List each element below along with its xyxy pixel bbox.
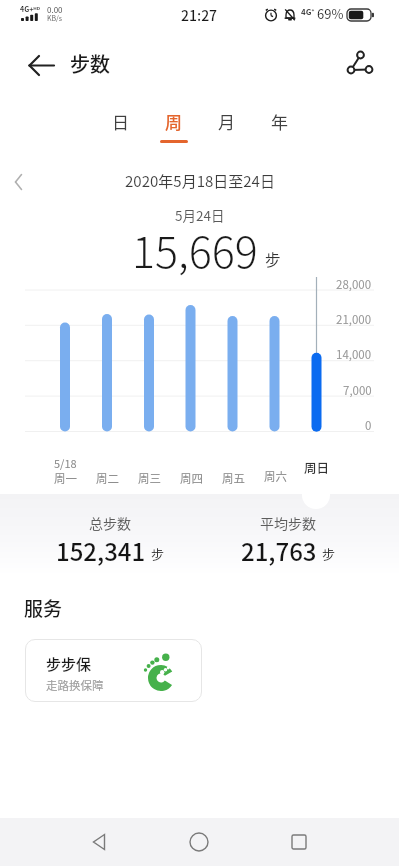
staticText: 周六 bbox=[264, 468, 287, 485]
staticText: 周一 bbox=[54, 470, 77, 487]
staticText: 步 bbox=[322, 544, 336, 563]
staticText: 21,763 bbox=[241, 533, 317, 568]
staticText: 5月24日 bbox=[175, 205, 225, 225]
staticText: 步 bbox=[265, 248, 281, 270]
staticText: 15,669 bbox=[132, 218, 258, 280]
button[interactable]: 日 bbox=[94, 109, 147, 143]
button[interactable]: 周 bbox=[147, 109, 200, 143]
button[interactable]: 月 bbox=[200, 109, 253, 143]
staticText: 周五 bbox=[222, 470, 245, 487]
staticText: 总步数 bbox=[89, 513, 131, 533]
staticText: 21:27 bbox=[181, 5, 218, 25]
staticText: 5/18 bbox=[54, 455, 77, 471]
staticText: 69% bbox=[317, 4, 344, 23]
button[interactable] bbox=[75, 818, 123, 866]
staticText: 28,000 bbox=[336, 276, 372, 293]
staticText: 月 bbox=[218, 109, 235, 134]
staticText: 平均步数 bbox=[260, 513, 316, 533]
staticText: 走路换保障 bbox=[46, 677, 104, 694]
staticText: 2020年5月18日至24日 bbox=[125, 170, 275, 192]
staticText: 周日 bbox=[304, 458, 330, 476]
staticText: 0.00 bbox=[47, 4, 63, 16]
staticText: 步步保 bbox=[46, 653, 92, 675]
button[interactable] bbox=[275, 818, 323, 866]
staticText: KB/s bbox=[47, 13, 63, 23]
staticText: 步数 bbox=[70, 49, 110, 78]
staticText: 服务 bbox=[24, 594, 63, 622]
staticText: 周 bbox=[165, 109, 182, 134]
staticText: 步 bbox=[151, 544, 165, 563]
staticText: 0 bbox=[365, 417, 372, 434]
staticText: 152,341 bbox=[56, 533, 146, 568]
staticText: 周二 bbox=[96, 470, 119, 487]
staticText: 21,000 bbox=[336, 311, 372, 328]
staticText: 日 bbox=[112, 109, 129, 134]
button[interactable]: 年 bbox=[253, 109, 306, 143]
staticText: 周四 bbox=[180, 470, 203, 487]
staticText: 4G⁺ bbox=[301, 6, 315, 18]
button[interactable] bbox=[336, 42, 380, 82]
staticText: 7,000 bbox=[343, 382, 372, 399]
button[interactable] bbox=[175, 818, 223, 866]
button[interactable]: 步步保 bbox=[25, 639, 202, 702]
staticText: 周三 bbox=[138, 470, 161, 487]
staticText: 14,000 bbox=[336, 346, 372, 363]
staticText: 4G+ᴴᴰ bbox=[20, 4, 41, 14]
staticText: 年 bbox=[271, 109, 288, 134]
button[interactable] bbox=[20, 50, 62, 80]
